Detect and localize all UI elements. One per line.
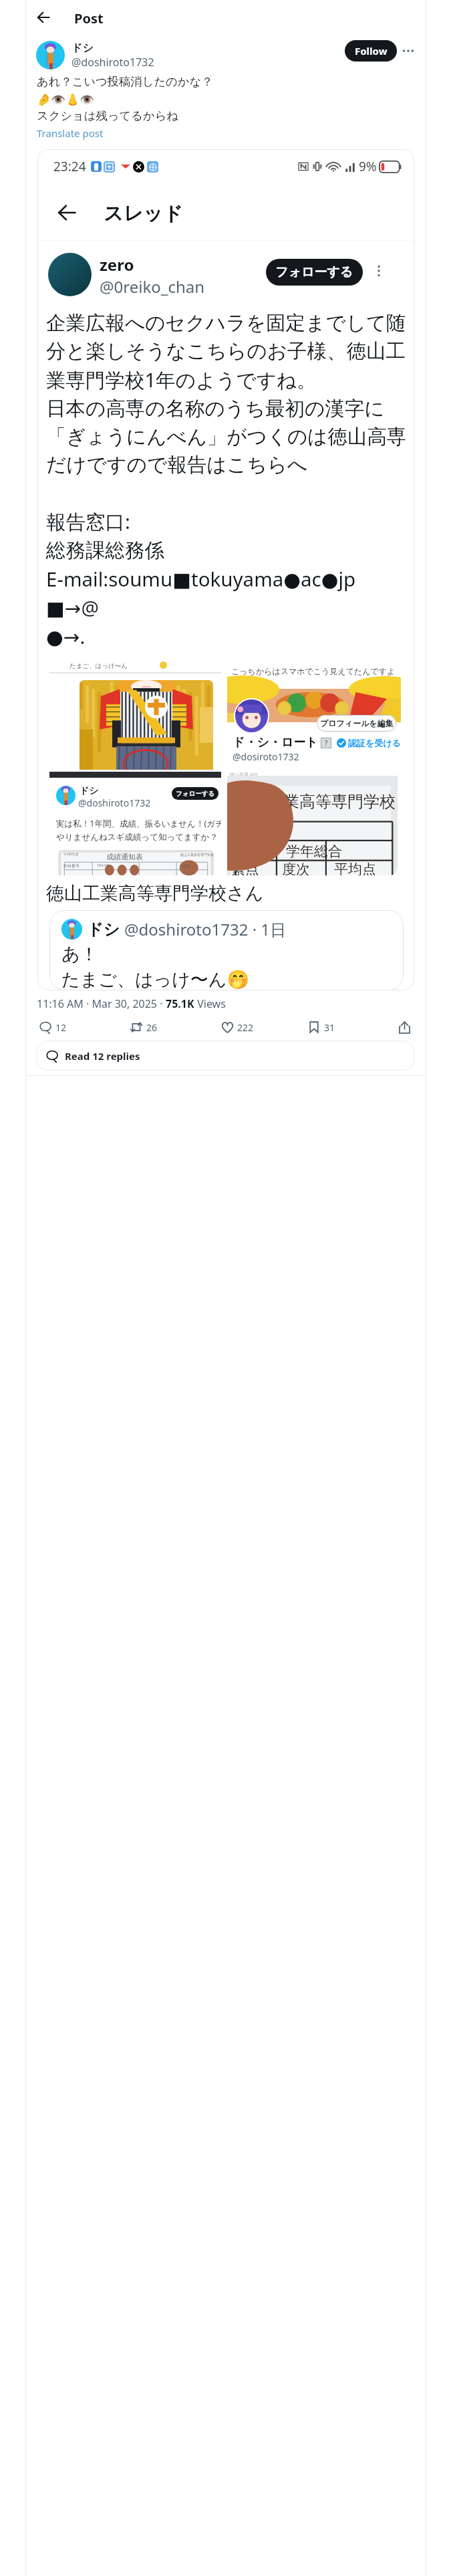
- staticText: スレッド: [104, 201, 183, 226]
- staticText: zero: [100, 253, 134, 276]
- staticText: 11:16 AM · Mar 30, 2025 ·: [37, 996, 166, 1011]
- button[interactable]: Share: [396, 1019, 413, 1035]
- staticText: プロフィールを編集: [320, 718, 394, 728]
- staticText: 度次: [282, 861, 310, 875]
- staticText: 成績通知表: [106, 852, 143, 861]
- button[interactable]: 222: [218, 1019, 254, 1035]
- staticText: 平均点: [334, 861, 376, 875]
- staticText: @dosiroto1732: [233, 750, 299, 763]
- staticText: ドシ: [80, 785, 99, 797]
- staticText: ドシ: [71, 41, 94, 55]
- staticText: Follow: [355, 44, 388, 58]
- staticText: @0reiko_chan: [100, 276, 205, 298]
- staticText: Read 12 replies: [65, 1049, 140, 1063]
- staticText: 26: [146, 1021, 158, 1034]
- staticText: 徳山高専 MFJ ...: [230, 772, 263, 778]
- staticText: @doshiroto1732: [78, 796, 151, 809]
- staticText: 31: [324, 1021, 335, 1034]
- button[interactable]: 31: [305, 1019, 335, 1035]
- button[interactable]: 12: [37, 1019, 67, 1035]
- staticText: あ！ たまご、はっけ〜ん🤭: [61, 943, 250, 990]
- staticText: 徳山工業高等専門学校さん: [46, 882, 264, 905]
- staticText: 企業広報へのセクハラを固定までして随分と楽しそうなこちらのお子様、徳山工業専門学…: [46, 311, 407, 650]
- staticText: 氏名: [182, 863, 190, 869]
- staticText: Translate post: [37, 126, 104, 140]
- button[interactable]: 23:24: [37, 149, 414, 990]
- button[interactable]: Translate post: [37, 126, 104, 140]
- staticText: 学年総合: [286, 843, 342, 860]
- button[interactable]: 26: [128, 1019, 158, 1035]
- staticText: ドシ: [87, 920, 120, 940]
- staticText: こっちからはスマホでこう見えてたんですよ: [231, 666, 396, 676]
- staticText: 23:24: [53, 158, 86, 175]
- staticText: 222: [237, 1021, 254, 1034]
- staticText: 徳山工業高等専門学校: [235, 792, 396, 812]
- staticText: Views: [194, 996, 226, 1011]
- staticText: 75.1K: [166, 996, 194, 1011]
- staticText: フォローする: [176, 790, 215, 798]
- staticText: Post: [74, 9, 104, 27]
- staticText: 実は私！1年間、成績、振るいません！(ガチ) やりませんねスギ成績って知ってます…: [56, 818, 221, 843]
- staticText: @doshiroto1732: [71, 55, 154, 70]
- staticText: @doshiroto1732 · 1日: [124, 918, 287, 940]
- staticText: 1DA-GN: [97, 863, 110, 868]
- staticText: 学科番号: [63, 863, 80, 869]
- staticText: ド・シ・ロート: [233, 735, 318, 750]
- button[interactable]: Follow: [345, 40, 397, 62]
- staticText: たまご、はっけ〜ん: [69, 662, 128, 670]
- staticText: 令和6年度: [63, 852, 79, 857]
- staticText: 12: [55, 1021, 67, 1034]
- staticText: フォローする: [275, 264, 353, 280]
- staticText: 徳山工業高等専門学校: [180, 853, 214, 857]
- button[interactable]: More: [398, 41, 418, 61]
- staticText: 9%: [359, 158, 377, 175]
- staticText: 素点: [231, 861, 259, 875]
- staticText: あれ？こいつ投稿消したのかな？ 🤌👁👃👁 スクショは残ってるからね: [37, 74, 213, 124]
- staticText: 認証を受ける: [348, 738, 401, 748]
- button[interactable]: Read 12 replies: [37, 1041, 414, 1071]
- staticText: ?: [325, 738, 328, 748]
- button[interactable]: Back: [30, 4, 57, 31]
